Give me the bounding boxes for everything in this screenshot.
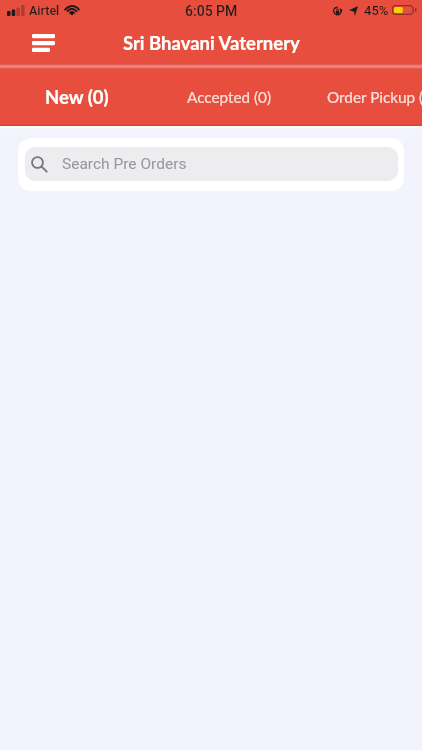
staticText: 45% (364, 3, 389, 18)
staticText: Order Pickup (0) (327, 88, 422, 106)
staticText: Search Pre Orders (62, 155, 187, 173)
button[interactable]: Search Pre Orders (25, 147, 398, 181)
staticText: Airtel (29, 3, 60, 18)
staticText: New (0) (45, 86, 109, 108)
button[interactable]: Accepted (0) (153, 68, 306, 126)
staticText: Accepted (0) (187, 88, 272, 106)
button[interactable]: Open navigation menu (22, 21, 64, 65)
staticText: 6:05 PM (185, 3, 238, 19)
button[interactable]: New (0) (0, 68, 153, 126)
button[interactable]: Order Pickup (0) (305, 68, 422, 126)
staticText: Sri Bhavani Vaternery (123, 32, 300, 54)
